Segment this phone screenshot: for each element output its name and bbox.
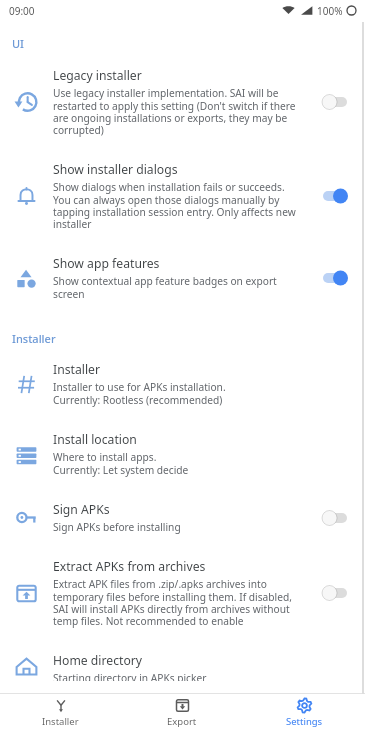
staticText: Installer: [53, 361, 100, 378]
staticText: Extract APKs from archives: [53, 558, 206, 575]
staticText: Installer: [12, 331, 56, 346]
staticText: Installer to use for APKs installation. …: [53, 380, 226, 407]
staticText: Show app features: [53, 255, 160, 272]
staticText: Install location: [53, 431, 137, 448]
staticText: Home directory: [53, 652, 143, 669]
button[interactable]: Toggle off: [321, 91, 349, 113]
staticText: Starting directory in APKs picker Curren…: [53, 671, 207, 681]
staticText: Legacy installer: [53, 67, 142, 84]
button[interactable]: Installer: [0, 349, 365, 419]
button[interactable]: Install location: [0, 419, 365, 489]
button[interactable]: Show app features: [0, 243, 365, 313]
staticText: Where to install apps. Currently: Let sy…: [53, 450, 189, 477]
staticText: 100%: [317, 4, 343, 18]
staticText: Show contextual app feature badges on ex…: [53, 274, 300, 301]
button[interactable]: Extract APKs from archives: [0, 546, 365, 640]
button[interactable]: Legacy installer: [0, 55, 365, 149]
staticText: Export: [167, 715, 197, 728]
button[interactable]: Sign APKs: [0, 489, 365, 546]
staticText: Installer: [42, 715, 79, 728]
staticText: Show installer dialogs: [53, 161, 178, 178]
staticText: Use legacy installer implementation. SAI…: [53, 86, 300, 137]
staticText: Sign APKs before installing: [53, 520, 181, 534]
button[interactable]: Home directory: [0, 640, 365, 693]
button[interactable]: Show installer dialogs: [0, 149, 365, 243]
staticText: Settings: [286, 715, 323, 728]
button[interactable]: Installer: [0, 694, 121, 732]
staticText: Extract APK files from .zip/.apks archiv…: [53, 577, 300, 628]
staticText: UI: [12, 36, 25, 51]
button[interactable]: Export: [121, 694, 243, 732]
button[interactable]: Settings: [243, 694, 365, 732]
button[interactable]: Toggle off: [321, 507, 349, 529]
staticText: Show dialogs when installation fails or …: [53, 180, 300, 231]
staticText: Sign APKs: [53, 501, 110, 518]
button[interactable]: Toggle off: [321, 582, 349, 604]
staticText: 09:00: [9, 4, 35, 18]
button[interactable]: Toggle on: [321, 267, 349, 289]
button[interactable]: Toggle on: [321, 185, 349, 207]
